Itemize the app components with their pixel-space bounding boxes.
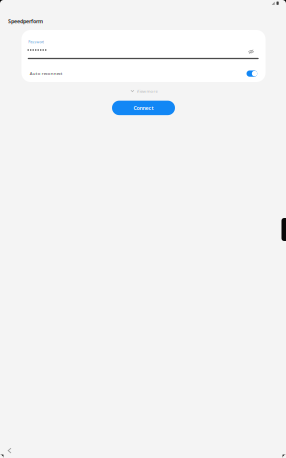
staticText: Speedperform	[8, 18, 43, 25]
staticText: Auto reconnect	[30, 70, 63, 76]
button[interactable]: Show password	[246, 47, 256, 57]
staticText: Password	[28, 40, 44, 44]
button[interactable]: Auto reconnect	[244, 69, 260, 79]
button[interactable]: Back	[4, 446, 14, 456]
button[interactable]: View more	[124, 87, 164, 95]
staticText: View more	[136, 88, 157, 94]
button[interactable]: Connect	[112, 101, 175, 115]
staticText: Connect	[133, 104, 153, 112]
